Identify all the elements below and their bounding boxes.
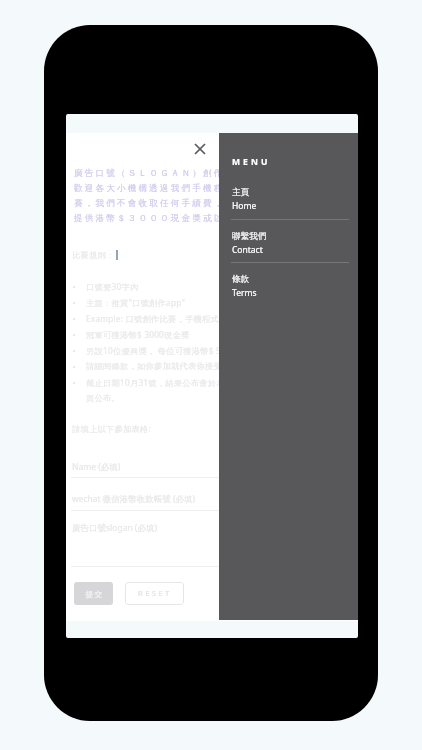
button[interactable]: 條款 xyxy=(219,270,358,303)
staticText: 比賽規則： xyxy=(72,250,115,260)
staticText: 廣告口號（ＳＬＯＧＡＮ）創作比賽 xyxy=(74,168,246,179)
staticText: 請填上以下參加表格: xyxy=(72,423,151,434)
staticText: RESET xyxy=(138,588,172,599)
staticText: 聯繫我們 xyxy=(232,231,267,242)
staticText: MENU xyxy=(232,156,271,168)
staticText: 另設10位優異獎， 每位可獲港幣$ 500 xyxy=(86,345,231,356)
button[interactable]: 廣告口號slogan (必填) xyxy=(72,522,157,534)
staticText: 主頁 xyxy=(232,187,250,198)
staticText: 頁公布。 xyxy=(86,393,120,403)
staticText: 主題：推賞"口號創作app" xyxy=(86,297,186,308)
button[interactable]: 提交 xyxy=(74,582,113,605)
button[interactable]: Name (必填) xyxy=(72,461,121,473)
staticText: Example: 口號創作比賽，手機程式參加 xyxy=(86,313,236,324)
staticText: 提交 xyxy=(85,589,103,599)
staticText: 請細閱條款，如你參加就代表你接受 xyxy=(86,361,222,371)
staticText: Name (必填) xyxy=(72,461,121,473)
button[interactable]: Close menu xyxy=(188,137,212,161)
staticText: Home xyxy=(232,200,257,212)
staticText: 截止日期10月31號，結果公布會於本網 xyxy=(86,377,234,388)
staticText: 廣告口號slogan (必填) xyxy=(72,522,157,534)
staticText: 口號要30字內 xyxy=(86,281,139,292)
button[interactable]: 主頁 xyxy=(219,183,358,216)
staticText: 歡迎各大小機構透過我們手機程式參加比 xyxy=(74,183,268,194)
staticText: wechat 微信港幣收款帳號 (必填) xyxy=(72,493,196,505)
button[interactable]: wechat 微信港幣收款帳號 (必填) xyxy=(72,493,196,505)
button[interactable]: 聯繫我們 xyxy=(219,227,358,260)
staticText: 提供港幣＄３０００現金獎或以上 xyxy=(74,213,236,224)
staticText: Terms xyxy=(232,287,257,299)
staticText: 冠軍可獲港幣$ 3000現金獎 xyxy=(86,329,190,340)
staticText: Contact xyxy=(232,244,263,256)
button[interactable]: RESET xyxy=(125,582,184,605)
staticText: 賽，我們不會收取任何手續費，優勝者可 xyxy=(74,198,268,209)
staticText: 條款 xyxy=(232,274,250,285)
